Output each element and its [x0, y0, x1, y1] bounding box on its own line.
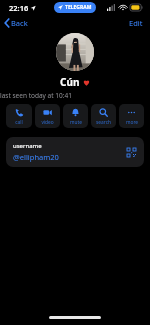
staticText: Edit	[129, 18, 143, 28]
staticText: mute	[70, 119, 82, 126]
button[interactable]: Profile photo	[56, 33, 94, 71]
button[interactable]: QR code	[126, 147, 137, 158]
staticText: 22:16	[9, 3, 29, 13]
button[interactable]: Mute	[63, 104, 88, 128]
other: Call	[15, 108, 24, 117]
button[interactable]: username	[6, 137, 144, 167]
staticText: Back	[11, 18, 28, 28]
other: Video call	[43, 108, 52, 117]
other: Search	[99, 108, 108, 117]
button[interactable]: More	[119, 104, 144, 128]
other: Mute	[71, 108, 80, 117]
button[interactable]: Video call	[35, 104, 60, 128]
staticText: call	[15, 119, 23, 126]
staticText: TELEGRAM	[65, 4, 92, 11]
button[interactable]: Call	[6, 104, 32, 128]
other: More	[127, 108, 136, 117]
staticText: Cún	[60, 75, 80, 89]
button[interactable]: Search	[91, 104, 116, 128]
staticText: @ellipham20	[13, 152, 59, 162]
staticText: video	[41, 119, 54, 126]
staticText: last seen today at 10:41	[0, 91, 150, 100]
button[interactable]: Edit	[122, 16, 150, 30]
button[interactable]: Back	[0, 16, 34, 30]
staticText: username	[13, 142, 42, 150]
staticText: search	[96, 119, 111, 126]
staticText: more	[126, 119, 138, 126]
